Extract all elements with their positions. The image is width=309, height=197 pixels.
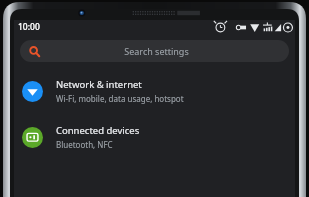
staticText: 10:00 xyxy=(18,21,40,33)
button[interactable]: Search settings xyxy=(20,40,289,62)
button[interactable]: Connected devices xyxy=(14,114,295,160)
other: Network and internet xyxy=(26,85,39,98)
staticText: Wi-Fi, mobile, data usage, hotspot xyxy=(56,93,184,104)
other: Connected devices xyxy=(26,131,39,144)
staticText: Bluetooth, NFC xyxy=(56,139,113,150)
staticText: Connected devices xyxy=(56,124,140,137)
staticText: Search settings xyxy=(36,45,277,57)
button[interactable]: Network and internet xyxy=(14,68,295,114)
staticText: Network & internet xyxy=(56,78,142,91)
